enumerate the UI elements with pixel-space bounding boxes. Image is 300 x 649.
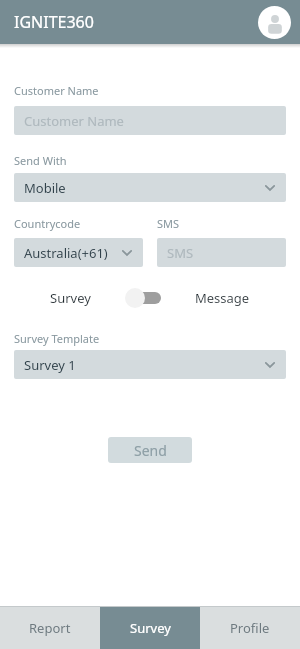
staticText: Report — [29, 619, 71, 637]
staticText: Send — [134, 441, 167, 460]
button[interactable]: Profile — [200, 607, 300, 649]
button[interactable]: Mobile — [14, 173, 286, 202]
staticText: Australia(+61) — [24, 244, 121, 262]
staticText: Profile — [230, 619, 270, 637]
staticText: Survey 1 — [24, 356, 264, 374]
staticText: Send With — [14, 153, 67, 168]
staticText: SMS — [157, 216, 180, 231]
staticText: Survey Template — [14, 331, 100, 346]
button[interactable] — [258, 6, 291, 39]
staticText: Message — [195, 289, 250, 307]
button[interactable]: Australia(+61) — [14, 238, 143, 267]
button[interactable]: SMS — [157, 238, 286, 267]
button[interactable] — [125, 288, 161, 308]
staticText: IGNITE360 — [14, 11, 94, 33]
staticText: Survey — [50, 289, 91, 307]
staticText: SMS — [167, 244, 276, 262]
staticText: Customer Name — [14, 83, 99, 98]
button[interactable]: Report — [0, 607, 100, 649]
staticText: Countrycode — [14, 216, 81, 231]
button[interactable]: Survey — [100, 607, 200, 649]
button[interactable]: Send — [108, 437, 192, 463]
staticText: Customer Name — [24, 112, 276, 130]
staticText: Survey — [130, 619, 171, 637]
staticText: Mobile — [24, 179, 264, 197]
button[interactable]: Customer Name — [14, 106, 286, 135]
button[interactable]: Survey 1 — [14, 350, 286, 379]
